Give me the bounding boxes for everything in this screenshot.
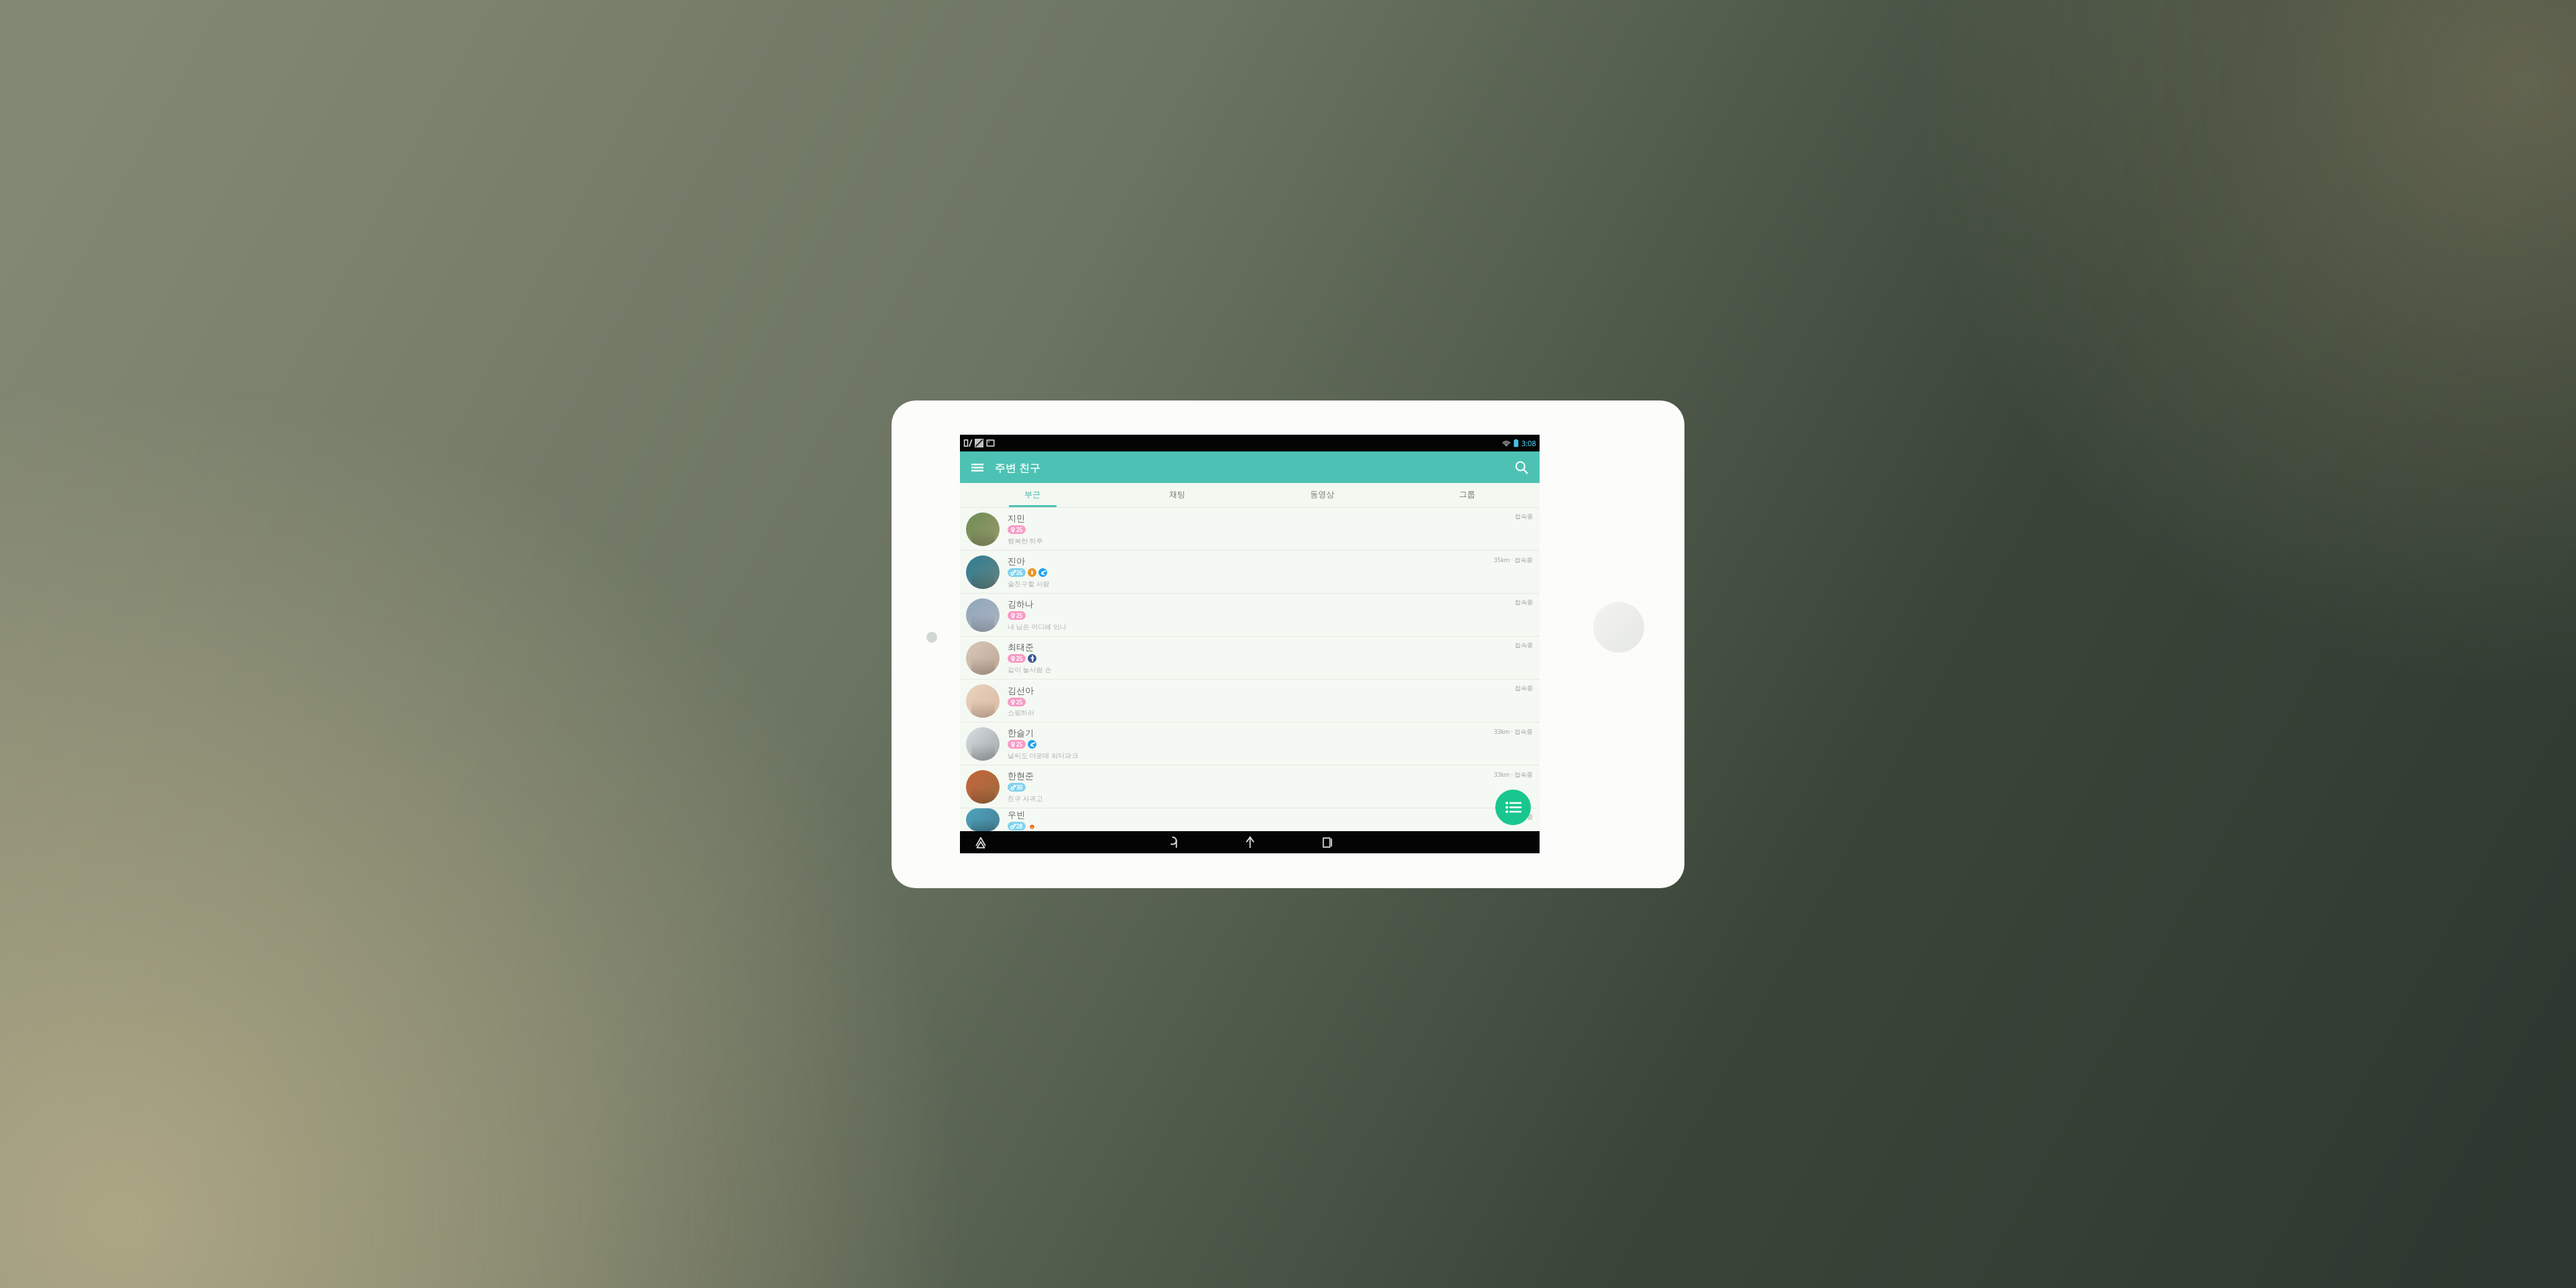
button[interactable]: 진아 (960, 551, 1540, 593)
staticText: 33km · 접속중 (1494, 727, 1533, 735)
button[interactable]: 홈 (1240, 833, 1260, 852)
staticText: 접속중 (1515, 513, 1533, 520)
staticText: 김하나 (1008, 598, 1034, 609)
staticText: 그룹 (1459, 489, 1475, 499)
button[interactable]: 한현준 (960, 765, 1540, 808)
staticText: 25 (1016, 526, 1023, 533)
staticText: 채팅 (1169, 489, 1185, 499)
staticText: 술친구할 사람 (1008, 579, 1050, 588)
staticText: 접속중 (1515, 813, 1533, 820)
staticText: 내 님은 어디에 있나 (1008, 622, 1067, 631)
staticText: 한현준 (1008, 770, 1034, 781)
staticText: 30 (1016, 784, 1023, 791)
staticText: 35km · 접속중 (1494, 555, 1533, 563)
button[interactable]: 목록 보기 (1495, 790, 1531, 825)
staticText: 접속중 (1515, 684, 1533, 692)
staticText: 우빈 (1008, 809, 1025, 820)
staticText: 접속중 (1515, 598, 1533, 606)
staticText: 같이 놀사람 손 (1008, 665, 1052, 674)
button[interactable]: 홈 제스처 (971, 833, 989, 851)
staticText: 행복한 하루 (1008, 536, 1043, 545)
button[interactable]: 최근 앱 (1318, 833, 1337, 852)
button[interactable]: 뒤로 (1163, 833, 1183, 852)
staticText: 동영상 (1310, 489, 1334, 499)
staticText: 주변 친구 (995, 460, 1041, 475)
staticText: 접속중 (1515, 641, 1533, 649)
button[interactable]: 최태준 (960, 637, 1540, 679)
staticText: 25 (1016, 612, 1023, 619)
staticText: 진아 (1008, 555, 1025, 566)
staticText: 25 (1016, 698, 1023, 706)
staticText: 부근 (1024, 489, 1040, 499)
staticText: 지민 (1008, 513, 1025, 523)
button[interactable]: 한슬기 (960, 722, 1540, 765)
button[interactable]: 우빈 (960, 808, 1540, 831)
button[interactable]: 부근 (960, 483, 1105, 505)
button[interactable]: 검색 (1508, 454, 1534, 480)
staticText: 25 (1016, 655, 1023, 662)
button[interactable]: 그룹 (1395, 483, 1540, 505)
button[interactable]: 지민 (960, 508, 1540, 550)
button[interactable]: 채팅 (1105, 483, 1250, 505)
button[interactable]: 김선아 (960, 680, 1540, 722)
staticText: 김선아 (1008, 685, 1034, 696)
button[interactable]: 메뉴 (965, 455, 989, 480)
staticText: 날씨도 더운데 워터파크 (1008, 751, 1079, 760)
staticText: 친구 사귀고 (1008, 794, 1043, 803)
staticText: 한슬기 (1008, 727, 1034, 738)
button[interactable]: 동영상 (1250, 483, 1395, 505)
staticText: 26 (1016, 569, 1023, 576)
staticText: 쇼핑하러 (1008, 708, 1034, 717)
staticText: 25 (1016, 741, 1023, 748)
staticText: 33km · 접속중 (1494, 770, 1533, 778)
staticText: 28 (1016, 822, 1023, 830)
staticText: 3:08 (1521, 438, 1536, 448)
button[interactable]: 김하나 (960, 594, 1540, 636)
staticText: 최태준 (1008, 641, 1034, 652)
